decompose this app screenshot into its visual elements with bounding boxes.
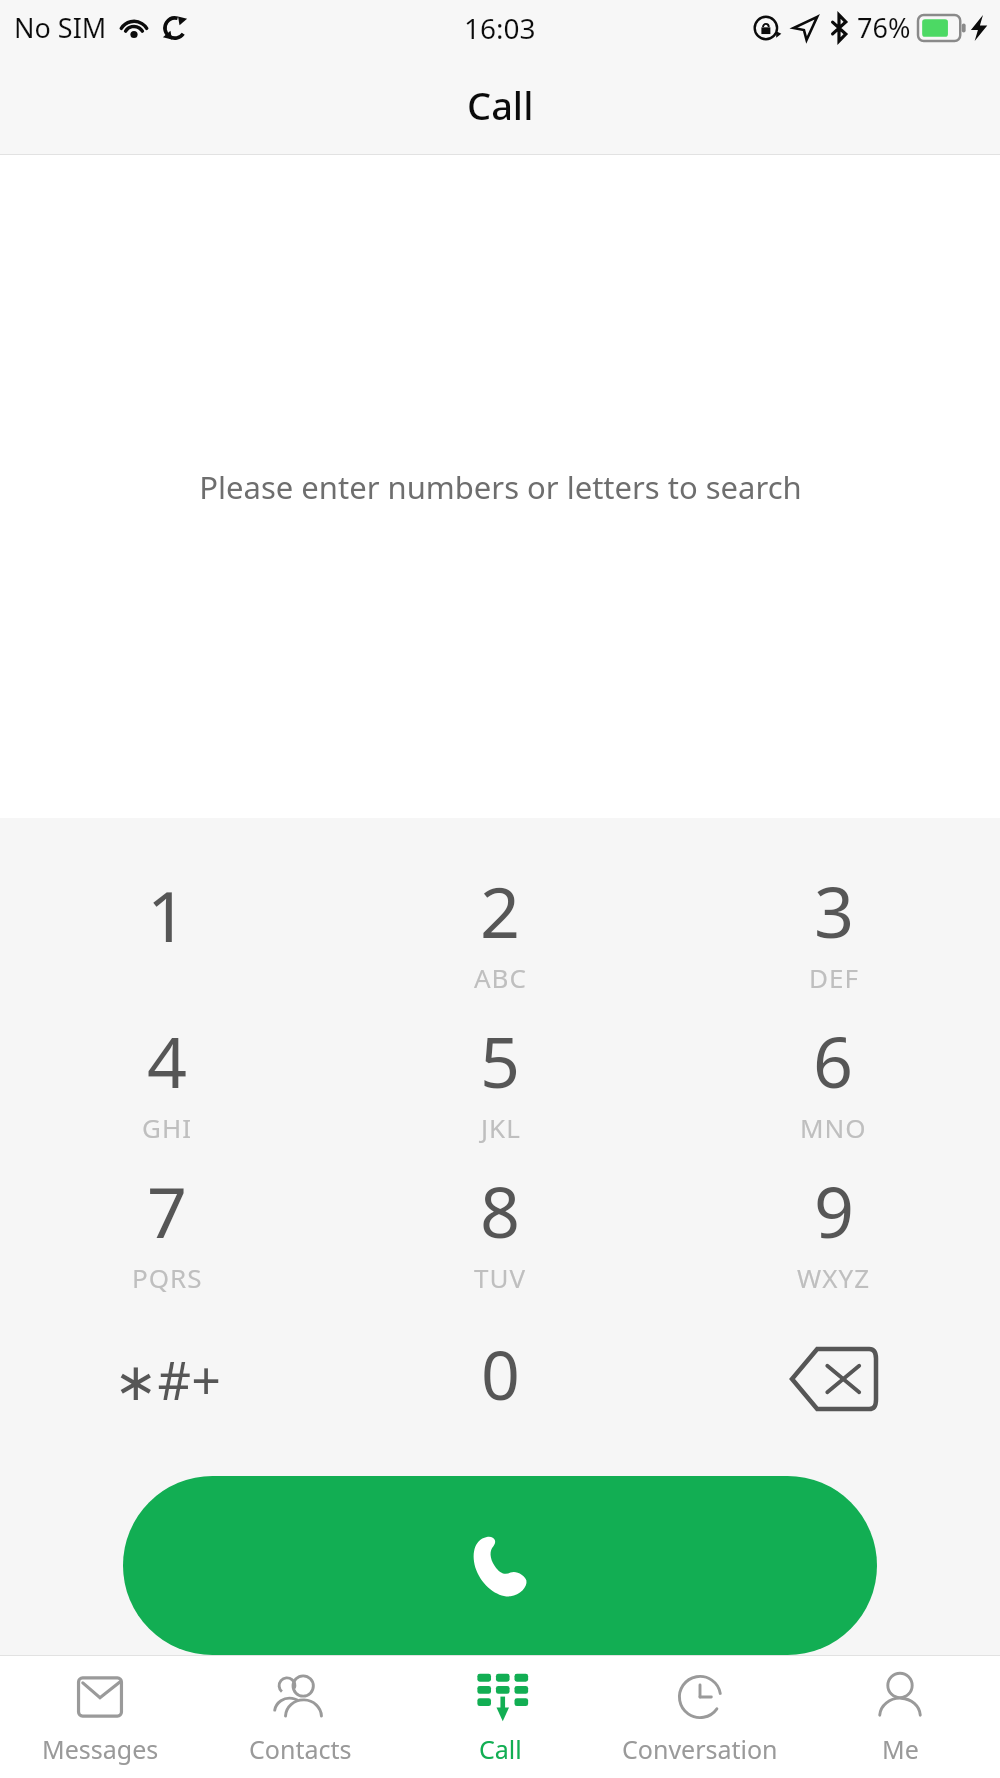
staticText: TUV [474, 1260, 527, 1295]
button[interactable]: Call [123, 1476, 877, 1655]
button[interactable]: 1 [0, 854, 334, 1004]
staticText: 76% [857, 9, 911, 46]
staticText: Conversation [622, 1732, 778, 1766]
button[interactable]: Me [800, 1656, 1000, 1778]
button[interactable]: Messages [0, 1656, 200, 1778]
staticText: 3 [814, 863, 855, 958]
staticText: Contacts [249, 1732, 352, 1766]
staticText: No SIM [14, 9, 107, 46]
button[interactable]: 0 [334, 1304, 667, 1454]
button[interactable]: 3 [667, 854, 1000, 1004]
staticText: Call [467, 79, 534, 131]
staticText: GHI [142, 1110, 193, 1145]
staticText: JKL [481, 1110, 521, 1145]
staticText: 7 [147, 1163, 188, 1258]
staticText: 6 [813, 1013, 854, 1108]
staticText: MNO [800, 1110, 867, 1145]
staticText: Messages [42, 1732, 159, 1766]
button[interactable]: 9 [667, 1154, 1000, 1304]
staticText: WXYZ [797, 1260, 871, 1295]
button[interactable]: Backspace [667, 1304, 1000, 1454]
staticText: ∗#+ [114, 1344, 221, 1415]
button[interactable]: 8 [334, 1154, 667, 1304]
staticText: 16:03 [464, 9, 536, 47]
staticText: Me [882, 1732, 919, 1766]
staticText: DEF [809, 960, 859, 995]
staticText: 4 [147, 1013, 188, 1108]
button[interactable]: Call [400, 1656, 600, 1778]
button[interactable]: ∗#+ [0, 1304, 334, 1454]
staticText: ABC [474, 960, 527, 995]
button[interactable]: 5 [334, 1004, 667, 1154]
staticText: 2 [480, 863, 521, 958]
staticText: 9 [814, 1163, 855, 1258]
button[interactable]: 7 [0, 1154, 334, 1304]
button[interactable]: Contacts [200, 1656, 400, 1778]
staticText: 5 [480, 1013, 521, 1108]
staticText: Please enter numbers or letters to searc… [199, 466, 802, 508]
button[interactable]: Conversation [600, 1656, 800, 1778]
staticText: 8 [480, 1163, 521, 1258]
staticText: Call [479, 1732, 522, 1766]
staticText: 1 [147, 867, 188, 962]
staticText: PQRS [132, 1260, 203, 1295]
button[interactable]: 2 [334, 854, 667, 1004]
button[interactable]: 4 [0, 1004, 334, 1154]
button[interactable]: 6 [667, 1004, 1000, 1154]
staticText: 0 [481, 1327, 520, 1420]
